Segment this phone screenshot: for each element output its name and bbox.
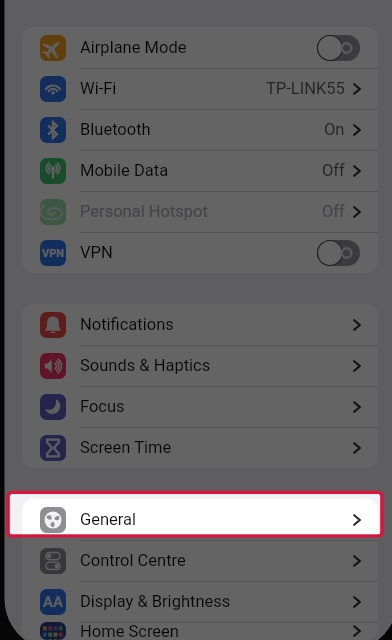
button[interactable]: AA	[22, 581, 378, 622]
staticText: Airplane Mode	[80, 38, 187, 57]
button[interactable]: Personal Hotspot	[22, 191, 378, 232]
staticText: Off	[322, 161, 345, 180]
staticText: Display & Brightness	[80, 592, 231, 611]
staticText: General	[80, 510, 137, 529]
staticText: Focus	[80, 397, 125, 416]
button[interactable]: Notifications	[22, 304, 378, 345]
staticText: On	[324, 120, 345, 139]
staticText: VPN	[42, 247, 65, 260]
button[interactable]: Wi-Fi	[22, 68, 378, 109]
button[interactable]: Mobile Data	[22, 150, 378, 191]
staticText: Personal Hotspot	[80, 202, 208, 221]
staticText: Wi-Fi	[80, 79, 117, 98]
button[interactable]: Focus	[22, 386, 378, 427]
staticText: AA	[43, 593, 63, 611]
staticText: Control Centre	[80, 551, 186, 570]
button[interactable]: General	[22, 499, 378, 540]
staticText: Mobile Data	[80, 161, 169, 180]
button[interactable]: Toggle	[317, 35, 360, 61]
button[interactable]: Home Screen	[22, 622, 378, 640]
button[interactable]: Airplane Mode	[22, 27, 378, 68]
staticText: Off	[322, 202, 345, 221]
button[interactable]: Sounds & Haptics	[22, 345, 378, 386]
staticText: Screen Time	[80, 438, 172, 457]
button[interactable]: Toggle	[317, 240, 360, 266]
staticText: Bluetooth	[80, 120, 151, 139]
staticText: Sounds & Haptics	[80, 356, 211, 375]
staticText: Notifications	[80, 315, 174, 334]
button[interactable]: Bluetooth	[22, 109, 378, 150]
button[interactable]: Control Centre	[22, 540, 378, 581]
staticText: TP-LINK55	[266, 79, 345, 98]
button[interactable]: Screen Time	[22, 427, 378, 468]
staticText: Home Screen	[80, 622, 179, 640]
staticText: VPN	[80, 243, 113, 262]
button[interactable]: VPN	[22, 232, 378, 273]
